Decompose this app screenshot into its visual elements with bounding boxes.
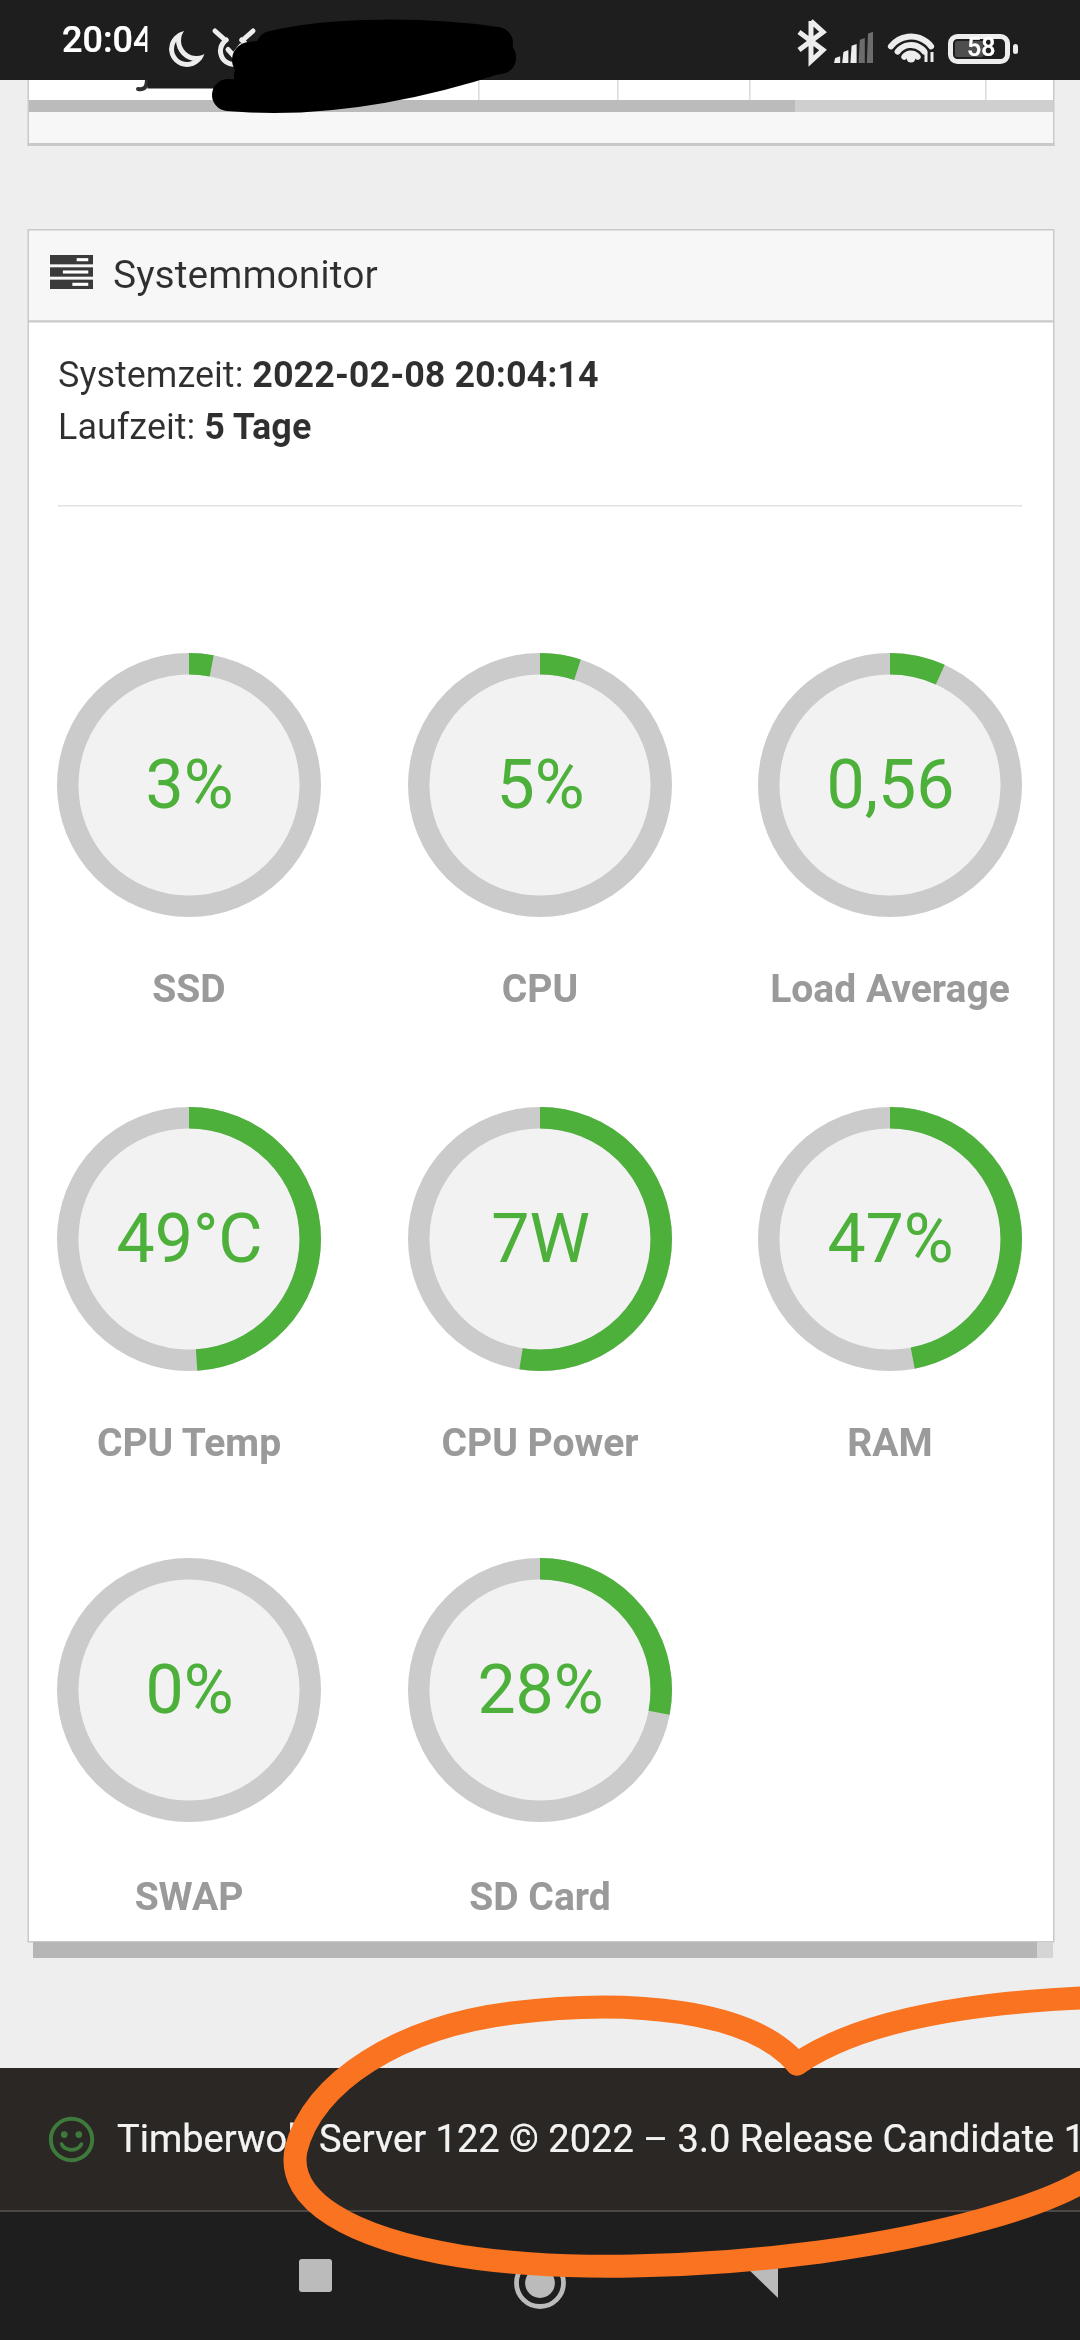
staticText: 28%	[477, 1650, 604, 1730]
staticText: CPU Power	[340, 1420, 740, 1466]
staticText: 5%	[496, 745, 585, 825]
button[interactable]: 49°C	[14, 1089, 364, 1433]
staticText: 20:04	[62, 19, 154, 61]
button[interactable]: 3%	[14, 635, 364, 979]
button[interactable]: Back	[745, 2266, 778, 2298]
staticText: Systemmonitor	[113, 252, 378, 298]
button[interactable]: 28%	[365, 1540, 715, 1884]
staticText: CPU Temp	[0, 1420, 389, 1466]
button[interactable]: Recent apps	[299, 2259, 332, 2292]
button[interactable]: 0,56	[715, 635, 1065, 979]
staticText: Load Average	[690, 966, 1080, 1012]
staticText: 0,56	[826, 745, 955, 825]
staticText: CPU	[340, 966, 740, 1012]
button[interactable]: 5%	[365, 635, 715, 979]
staticText: RAM	[690, 1420, 1080, 1466]
staticText: 0%	[145, 1650, 234, 1730]
staticText: 58	[967, 33, 996, 62]
button[interactable]: 47%	[715, 1089, 1065, 1433]
button[interactable]: Systemmonitor	[29, 230, 1053, 320]
button[interactable]: Home	[516, 2259, 564, 2307]
staticText: 47%	[827, 1199, 954, 1279]
staticText: SD Card	[340, 1874, 740, 1920]
staticText: SSD	[0, 966, 389, 1012]
staticText: SWAP	[0, 1874, 389, 1920]
staticText: 7W	[491, 1199, 590, 1279]
staticText: Timberwolf Server 122 © 2022 – 3.0 Relea…	[117, 2117, 1080, 2162]
staticText: Laufzeit: 5 Tage	[58, 406, 312, 448]
staticText: 49°C	[116, 1199, 263, 1279]
staticText: 3%	[145, 745, 234, 825]
staticText: Systemzeit: 2022-02-08 20:04:14	[58, 354, 599, 396]
button[interactable]: 0%	[14, 1540, 364, 1884]
button[interactable]: 7W	[365, 1089, 715, 1433]
button[interactable]: Timberwolf Server 122 © 2022 – 3.0 Relea…	[0, 2068, 1080, 2210]
